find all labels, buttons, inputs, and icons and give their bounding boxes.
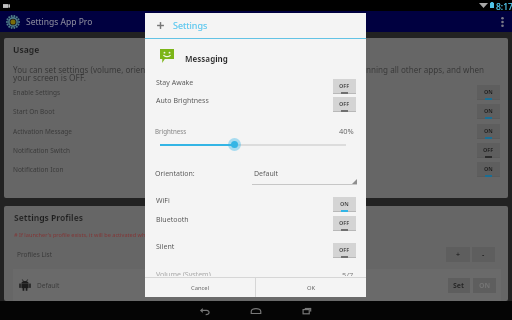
button[interactable]: OFF: [333, 79, 356, 94]
staticText: 40%: [339, 126, 354, 136]
staticText: Notification Switch: [13, 146, 71, 155]
button[interactable]: Default: [252, 165, 357, 185]
button[interactable]: Bluetooth: [145, 209, 366, 231]
button[interactable]: Cancel: [145, 278, 255, 297]
staticText: Start On Boot: [13, 107, 55, 116]
button[interactable]: ON: [333, 197, 356, 212]
button[interactable]: Home: [231, 301, 281, 320]
staticText: Settings App Pro: [26, 16, 93, 28]
staticText: Default: [37, 281, 60, 290]
staticText: your screen is OFF.: [13, 72, 86, 83]
button[interactable]: OK: [256, 278, 366, 297]
staticText: Stay Awake: [156, 78, 194, 88]
staticText: Silent: [156, 242, 175, 252]
staticText: 8:17: [496, 1, 512, 12]
staticText: # If launcher's profile exists, it will …: [14, 231, 212, 239]
button[interactable]: -: [472, 247, 495, 262]
button[interactable]: OFF: [333, 243, 356, 258]
button[interactable]: OFF: [477, 143, 500, 158]
staticText: Brightness: [155, 127, 187, 135]
staticText: ON: [484, 165, 493, 172]
staticText: WiFi: [156, 196, 170, 206]
button[interactable]: More options: [492, 11, 512, 32]
staticText: 5/7: [342, 271, 354, 276]
staticText: OFF: [339, 100, 350, 107]
staticText: Orientation:: [155, 169, 195, 179]
staticText: OFF: [483, 146, 494, 153]
button[interactable]: ON: [477, 124, 500, 139]
staticText: ON: [484, 127, 493, 134]
button[interactable]: ON: [477, 104, 500, 119]
button[interactable]: Enable Settings: [4, 82, 508, 102]
staticText: Notification Icon: [13, 165, 64, 174]
staticText: Messaging: [185, 53, 228, 64]
button[interactable]: OFF: [333, 216, 356, 231]
button[interactable]: Auto Brightness: [145, 90, 366, 112]
button[interactable]: ON: [473, 278, 496, 293]
button[interactable]: Recent apps: [282, 301, 332, 320]
staticText: Auto Brightness: [156, 96, 209, 106]
staticText: OFF: [339, 82, 350, 89]
button[interactable]: Stay Awake: [145, 72, 366, 94]
staticText: +: [456, 250, 461, 260]
staticText: Settings Profiles: [14, 212, 83, 224]
button[interactable]: ON: [477, 162, 500, 177]
staticText: OFF: [339, 219, 350, 226]
staticText: ON: [484, 88, 493, 95]
staticText: Enable Settings: [13, 88, 61, 97]
button[interactable]: WiFi: [145, 190, 366, 212]
staticText: ON: [479, 281, 491, 291]
staticText: Cancel: [191, 284, 210, 292]
button[interactable]: ON: [477, 85, 500, 100]
button[interactable]: Notification Icon: [4, 159, 508, 179]
staticText: You can set settings (volume, orientatio…: [13, 64, 485, 75]
button[interactable]: +: [446, 247, 470, 262]
button[interactable]: Start On Boot: [4, 101, 508, 121]
staticText: Profiles List: [17, 250, 53, 259]
staticText: Default: [254, 169, 279, 179]
staticText: Volume (System): [156, 271, 211, 276]
staticText: OFF: [339, 246, 350, 253]
staticText: Usage: [13, 44, 40, 56]
button[interactable]: Set: [448, 278, 470, 293]
staticText: Set: [453, 281, 465, 291]
button[interactable]: Notification Switch: [4, 140, 508, 160]
button[interactable]: Activation Message: [4, 121, 508, 141]
staticText: Activation Message: [13, 127, 73, 136]
staticText: OK: [307, 284, 316, 292]
staticText: Settings: [173, 19, 208, 31]
button[interactable]: Back: [180, 301, 230, 320]
staticText: -: [482, 250, 485, 260]
staticText: Bluetooth: [156, 215, 189, 225]
staticText: ON: [340, 200, 349, 207]
staticText: ON: [484, 107, 493, 114]
button[interactable]: Silent: [145, 236, 366, 258]
button[interactable]: OFF: [333, 97, 356, 112]
button[interactable]: [160, 137, 346, 152]
